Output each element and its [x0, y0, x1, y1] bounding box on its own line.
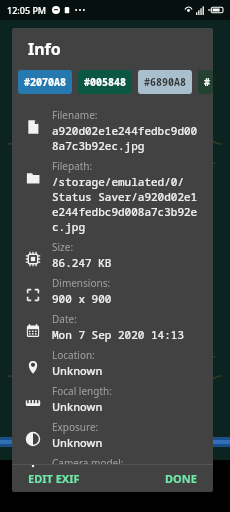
staticText: Camera model:: [52, 456, 124, 464]
staticText: 86.247 KB: [52, 255, 112, 270]
staticText: Location:: [52, 348, 95, 362]
button[interactable]: #2: [198, 70, 213, 94]
staticText: #005848: [84, 75, 126, 89]
staticText: EDIT EXIF: [28, 471, 80, 486]
staticText: a920d02e1e244fedbc9d008a7c3b92ec.jpg: [52, 123, 201, 153]
button[interactable]: #005848: [78, 70, 132, 94]
staticText: Info: [28, 38, 61, 60]
staticText: Focal length:: [52, 384, 112, 398]
staticText: DONE: [165, 471, 197, 486]
staticText: Date:: [52, 312, 77, 326]
button[interactable]: EDIT EXIF: [22, 467, 86, 490]
button[interactable]: DONE: [159, 467, 203, 490]
staticText: Unknown: [52, 399, 103, 414]
staticText: Filepath:: [52, 159, 93, 173]
staticText: 900 x 900: [52, 291, 112, 306]
staticText: Filename:: [52, 108, 98, 122]
staticText: #6890A8: [144, 75, 186, 89]
staticText: Size:: [52, 240, 74, 254]
staticText: #2: [204, 75, 207, 89]
staticText: Unknown: [52, 363, 103, 378]
staticText: 12:05 PM: [7, 4, 47, 16]
staticText: Dimensions:: [52, 276, 111, 290]
staticText: #2070A8: [24, 75, 66, 89]
staticText: Unknown: [52, 435, 103, 450]
staticText: /storage/emulated/0/Status Saver/a920d02…: [52, 174, 201, 234]
button[interactable]: #2070A8: [18, 70, 72, 94]
staticText: Mon 7 Sep 2020 14:13: [52, 327, 184, 342]
staticText: Exposure:: [52, 420, 99, 434]
button[interactable]: #6890A8: [138, 70, 192, 94]
